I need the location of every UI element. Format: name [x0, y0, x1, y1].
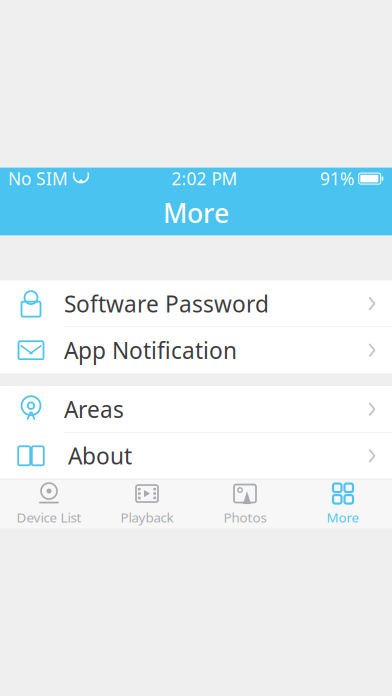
staticText: Playback	[120, 508, 173, 526]
button[interactable]: Areas	[0, 386, 392, 432]
button[interactable]: About	[0, 433, 392, 479]
staticText: About	[68, 441, 132, 471]
button[interactable]: Photos	[196, 480, 294, 528]
staticText: 2:02 PM	[171, 167, 237, 190]
button[interactable]: Playback	[98, 480, 196, 528]
staticText: Software Password	[64, 288, 269, 319]
staticText: App Notification	[64, 335, 237, 365]
staticText: Device List	[16, 508, 81, 526]
button[interactable]: Software Password	[0, 281, 392, 327]
button[interactable]: App Notification	[0, 327, 392, 373]
staticText: No SIM	[8, 167, 68, 190]
staticText: 91%	[320, 167, 354, 190]
staticText: Photos	[223, 508, 266, 526]
button[interactable]: Device List	[0, 480, 98, 528]
button[interactable]: More	[294, 480, 392, 528]
staticText: More	[163, 195, 229, 230]
staticText: Areas	[64, 394, 124, 424]
staticText: More	[326, 508, 359, 526]
